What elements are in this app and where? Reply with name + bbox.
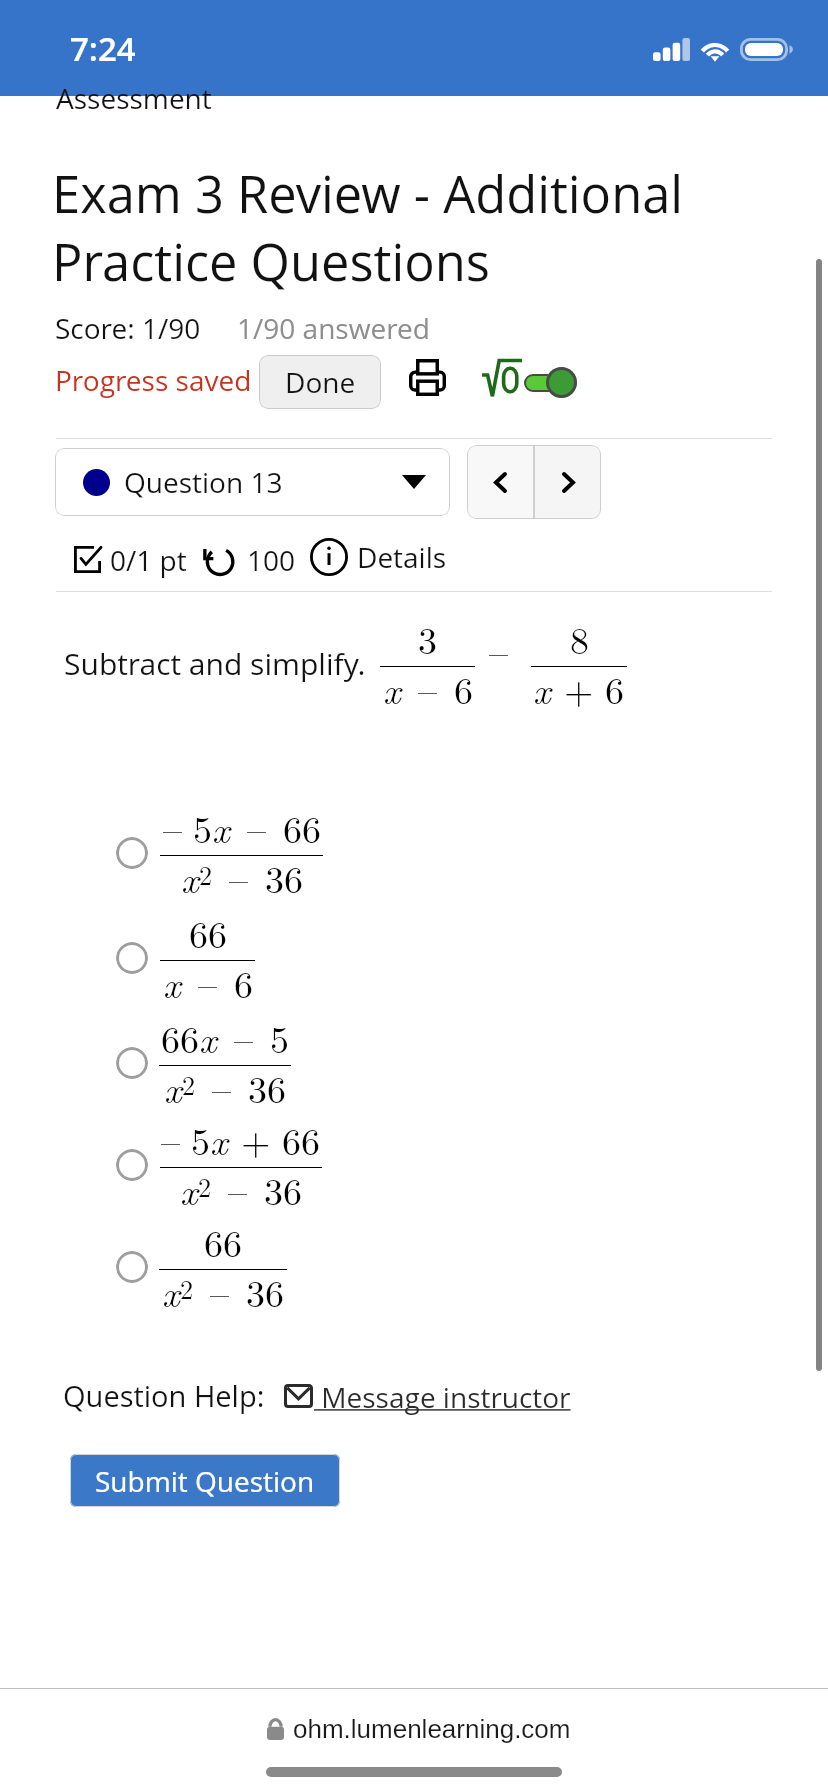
button[interactable]: Answer choice xyxy=(116,1251,148,1283)
staticText: Practice Questions xyxy=(52,227,490,296)
staticText: Subtract and simplify. xyxy=(64,643,366,684)
staticText: – xyxy=(210,1264,230,1318)
staticText: x xyxy=(162,1264,180,1318)
button[interactable]: Answer choice xyxy=(116,1149,148,1181)
button[interactable]: Next question xyxy=(535,445,601,519)
staticText: – xyxy=(489,623,509,677)
staticText: Details xyxy=(357,538,447,576)
button[interactable]: Toggle math view xyxy=(482,359,578,399)
staticText: x xyxy=(199,1010,217,1064)
staticText: 3 xyxy=(418,611,438,665)
staticText: – xyxy=(234,1010,254,1064)
staticText: – xyxy=(247,800,267,854)
staticText: 6 xyxy=(234,955,254,1009)
staticText: 5 xyxy=(193,800,213,854)
staticText: 2 xyxy=(182,1065,196,1102)
staticText: + xyxy=(241,1112,271,1166)
staticText: x xyxy=(212,800,230,854)
button[interactable]: Question 13 xyxy=(55,448,450,516)
staticText: 66 xyxy=(204,1214,243,1268)
button[interactable]: Previous question xyxy=(467,445,533,519)
staticText: x xyxy=(164,1060,182,1114)
staticText: 2 xyxy=(198,1167,212,1204)
staticText: 2 xyxy=(180,1269,194,1306)
staticText: 36 xyxy=(265,850,304,904)
staticText: Progress saved xyxy=(55,361,252,399)
staticText: x xyxy=(383,661,401,715)
staticText: 66 xyxy=(283,800,322,854)
staticText: Exam 3 Review - Additional xyxy=(52,159,684,228)
button[interactable]: Answer choice xyxy=(116,837,148,869)
staticText: Submit Question xyxy=(95,1462,315,1500)
staticText: 5 xyxy=(191,1112,211,1166)
staticText: 5 xyxy=(270,1010,290,1064)
staticText: 36 xyxy=(264,1162,303,1216)
button[interactable]: Details xyxy=(310,538,447,576)
staticText: x xyxy=(180,1162,198,1216)
staticText: 100 xyxy=(247,541,296,579)
button[interactable]: Print xyxy=(409,359,446,396)
staticText: 7:24 xyxy=(70,26,136,71)
staticText: 2 xyxy=(199,855,213,892)
staticText: 66 xyxy=(189,905,228,959)
staticText: – xyxy=(212,1060,232,1114)
staticText: – xyxy=(229,850,249,904)
staticText: – xyxy=(418,661,438,715)
staticText: – xyxy=(163,800,183,854)
staticText: ohm.lumenlearning.com xyxy=(293,1714,571,1743)
staticText: 6 xyxy=(454,661,474,715)
button[interactable]: Answer choice xyxy=(116,1047,148,1079)
staticText: 0/1 pt xyxy=(110,541,187,579)
staticText: 66 xyxy=(282,1112,321,1166)
button[interactable]: Message instructor xyxy=(284,1384,573,1424)
staticText: x xyxy=(210,1112,228,1166)
staticText: Question 13 xyxy=(124,463,283,501)
staticText: 6 xyxy=(605,661,625,715)
staticText: Message instructor xyxy=(314,1378,571,1416)
staticText: Question Help: xyxy=(63,1376,265,1415)
button[interactable]: Answer choice xyxy=(116,942,148,974)
staticText: – xyxy=(161,1112,181,1166)
button[interactable]: Done xyxy=(259,355,381,409)
staticText: Assessment xyxy=(56,79,212,117)
staticText: 1/90 answered xyxy=(237,309,430,347)
staticText: x xyxy=(533,661,551,715)
staticText: Score: 1/90 xyxy=(55,309,201,347)
staticText: – xyxy=(198,955,218,1009)
button[interactable]: Submit Question xyxy=(70,1454,340,1507)
staticText: + xyxy=(564,661,594,715)
staticText: 36 xyxy=(248,1060,287,1114)
staticText: 36 xyxy=(246,1264,285,1318)
staticText: 66 xyxy=(161,1010,200,1064)
staticText: Done xyxy=(285,363,356,401)
staticText: x xyxy=(163,955,181,1009)
staticText: – xyxy=(228,1162,248,1216)
staticText: 8 xyxy=(570,611,590,665)
staticText: x xyxy=(181,850,199,904)
